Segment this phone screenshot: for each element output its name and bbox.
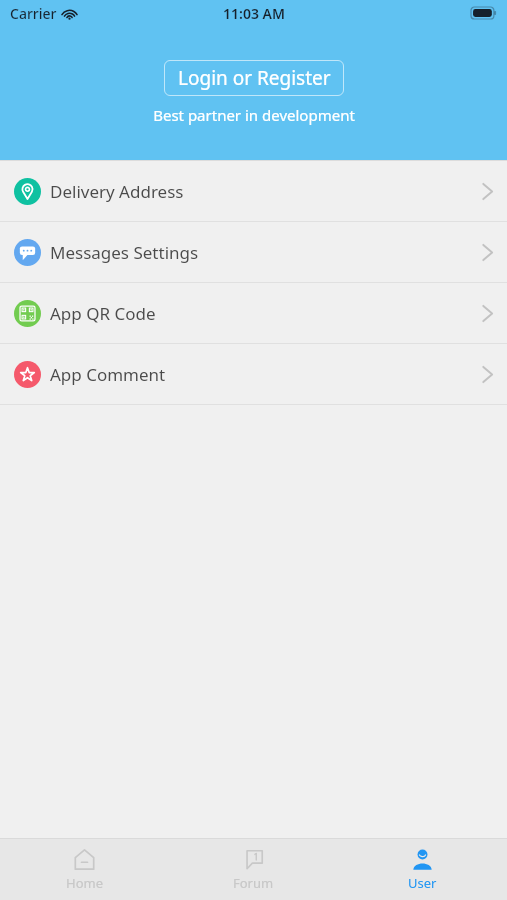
button[interactable]: Forum <box>169 839 338 900</box>
button[interactable]: Login or Register <box>164 60 344 96</box>
staticText: User <box>408 874 437 892</box>
button[interactable]: Messages Settings <box>0 222 507 282</box>
staticText: Login or Register <box>178 65 331 91</box>
staticText: App Comment <box>50 363 166 386</box>
button[interactable]: Delivery Address <box>0 161 507 221</box>
button[interactable]: App Comment <box>0 344 507 404</box>
staticText: 11:03 AM <box>223 4 285 23</box>
button[interactable]: Home <box>0 839 169 900</box>
staticText: Best partner in development <box>153 105 355 125</box>
button[interactable]: User <box>338 839 507 900</box>
staticText: Home <box>66 874 103 892</box>
staticText: App QR Code <box>50 302 156 325</box>
staticText: Messages Settings <box>50 241 199 264</box>
staticText: Carrier <box>10 4 57 23</box>
button[interactable]: App QR Code <box>0 283 507 343</box>
staticText: Forum <box>233 874 274 892</box>
staticText: Delivery Address <box>50 180 184 203</box>
